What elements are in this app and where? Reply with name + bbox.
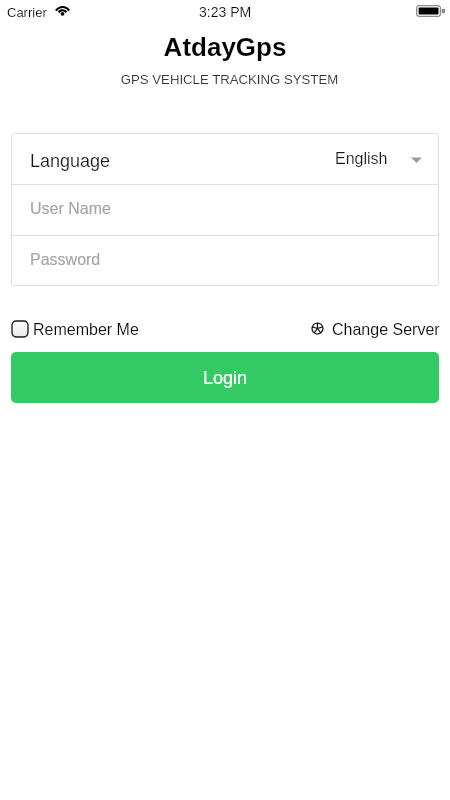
button[interactable]: Language [11,133,439,184]
staticText: Login [203,368,248,388]
button[interactable]: Remember Me checkbox [10,318,139,339]
button[interactable]: Change Server [311,318,440,339]
staticText: English [335,150,388,168]
staticText: User Name [30,200,111,218]
other: Select language [411,153,422,165]
button[interactable]: User Name [11,185,439,235]
staticText: Remember Me [33,321,139,339]
staticText: Password [30,251,101,269]
other: Battery full [416,5,445,17]
other: Change Server [311,322,324,335]
staticText: Carrier [7,5,47,20]
staticText: Change Server [332,321,440,339]
other: Remember Me checkbox [10,319,30,339]
button[interactable]: Password [11,236,439,286]
staticText: Language [30,151,111,171]
staticText: AtdayGps [0,32,450,61]
button[interactable]: Login [11,352,439,403]
staticText: 3:23 PM [199,4,252,20]
staticText: GPS VEHICLE TRACKING SYSTEM [9,72,450,87]
